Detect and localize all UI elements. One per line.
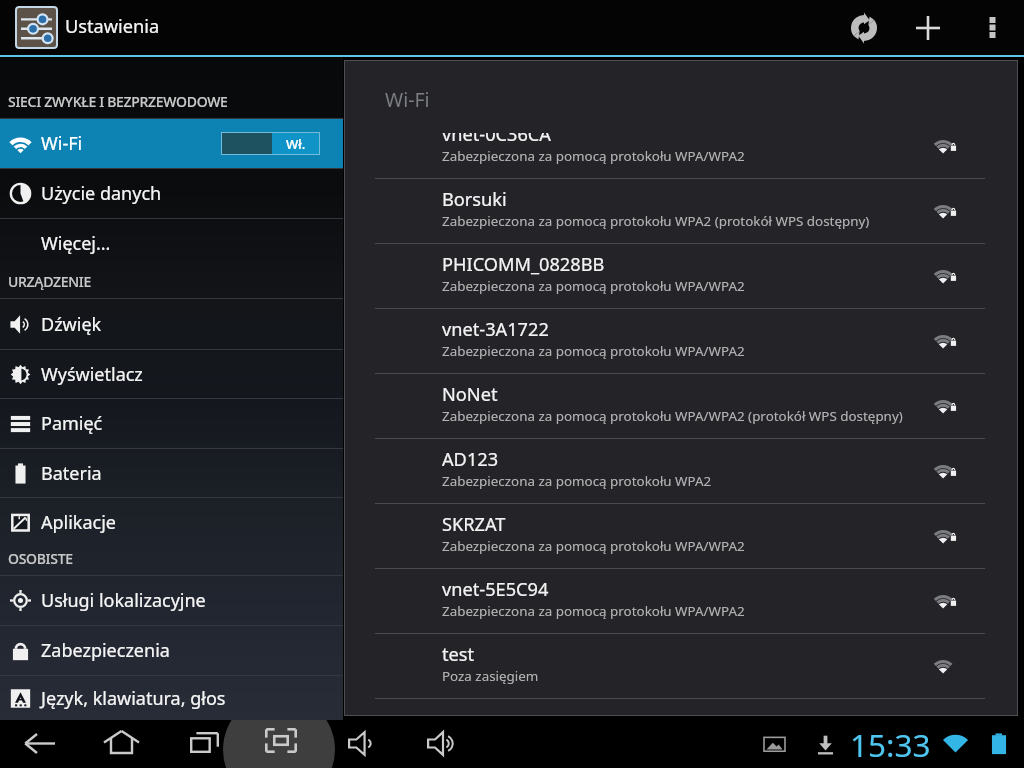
staticText: Wi-Fi <box>41 131 83 156</box>
staticText: Usługi lokalizacyjne <box>41 588 206 613</box>
button[interactable]: Więcej... <box>0 219 343 268</box>
staticText: Dźwięk <box>41 312 102 337</box>
button[interactable]: AD123 <box>344 439 1018 503</box>
staticText: Zabezpieczona za pomocą protokołu WPA/WP… <box>442 147 745 165</box>
staticText: Zabezpieczona za pomocą protokołu WPA2 <box>442 472 712 490</box>
staticText: Zabezpieczenia <box>41 638 170 663</box>
staticText: Zabezpieczona za pomocą protokołu WPA2 (… <box>442 212 870 230</box>
button[interactable]: Borsuki <box>344 179 1018 243</box>
staticText: Zabezpieczona za pomocą protokołu WPA/WP… <box>442 602 745 620</box>
button[interactable]: Home <box>82 720 161 766</box>
staticText: NoNet <box>442 382 498 407</box>
staticText: Borsuki <box>442 187 507 212</box>
button[interactable]: Użycie danych <box>0 169 343 218</box>
button[interactable]: vnet-5E5C94 <box>344 569 1018 633</box>
staticText: Wł. <box>286 135 306 153</box>
button[interactable]: NoNet <box>344 374 1018 438</box>
staticText: Poza zasięgiem <box>442 667 539 685</box>
button[interactable]: vnet-3A1722 <box>344 309 1018 373</box>
staticText: Użycie danych <box>41 181 162 206</box>
staticText: Ustawienia <box>65 14 160 39</box>
staticText: PHICOMM_0828BB <box>442 252 605 277</box>
button[interactable]: Back <box>2 720 77 767</box>
button[interactable]: test <box>344 634 1018 698</box>
button[interactable]: Pamięć <box>0 399 343 448</box>
button[interactable]: PHICOMM_0828BB <box>344 244 1018 308</box>
staticText: Zabezpieczona za pomocą protokołu WPA/WP… <box>442 342 745 360</box>
button[interactable]: Zabezpieczenia <box>0 626 343 675</box>
staticText: Pamięć <box>41 411 103 436</box>
button[interactable]: Wyświetlacz <box>0 350 343 398</box>
button[interactable]: Usługi lokalizacyjne <box>0 576 343 625</box>
staticText: SKRZAT <box>442 512 506 537</box>
button[interactable]: Bateria <box>0 449 343 497</box>
button[interactable]: More options <box>966 0 1018 55</box>
staticText: OSOBISTE <box>8 549 73 568</box>
button[interactable]: Recent apps <box>168 720 241 766</box>
button[interactable]: Volume up <box>405 720 474 767</box>
staticText: Zabezpieczona za pomocą protokołu WPA/WP… <box>442 537 745 555</box>
staticText: vnet-3A1722 <box>442 317 549 342</box>
staticText: Język, klawiatura, głos <box>41 686 226 711</box>
staticText: Aplikacje <box>41 510 117 535</box>
staticText: 15:33 <box>850 723 931 766</box>
button[interactable]: Add network <box>900 0 956 55</box>
staticText: URZĄDZENIE <box>8 272 91 291</box>
staticText: test <box>442 642 475 667</box>
staticText: Więcej... <box>41 231 111 256</box>
staticText: SIECI ZWYKŁE I BEZPRZEWODOWE <box>8 92 228 111</box>
button[interactable]: Ustawienia <box>15 0 170 55</box>
staticText: Wyświetlacz <box>41 362 143 387</box>
button[interactable]: Wi-Fi <box>0 119 343 168</box>
button[interactable]: Dźwięk <box>0 299 343 349</box>
staticText: Zabezpieczona za pomocą protokołu WPA/WP… <box>442 407 903 425</box>
button[interactable]: Język, klawiatura, głos <box>0 676 343 720</box>
button[interactable]: Screenshot <box>243 720 319 764</box>
button[interactable]: Scan for networks <box>836 0 892 55</box>
staticText: Wi-Fi <box>385 86 430 113</box>
staticText: Bateria <box>41 461 102 486</box>
button[interactable]: Aplikacje <box>0 498 343 546</box>
staticText: Zabezpieczona za pomocą protokołu WPA/WP… <box>442 277 745 295</box>
button[interactable]: Volume down <box>326 720 393 767</box>
button[interactable]: vnet-0C36CA <box>344 133 1018 178</box>
staticText: AD123 <box>442 447 499 472</box>
staticText: vnet-5E5C94 <box>442 577 549 602</box>
button[interactable]: SKRZAT <box>344 504 1018 568</box>
staticText: vnet-0C36CA <box>442 133 551 147</box>
